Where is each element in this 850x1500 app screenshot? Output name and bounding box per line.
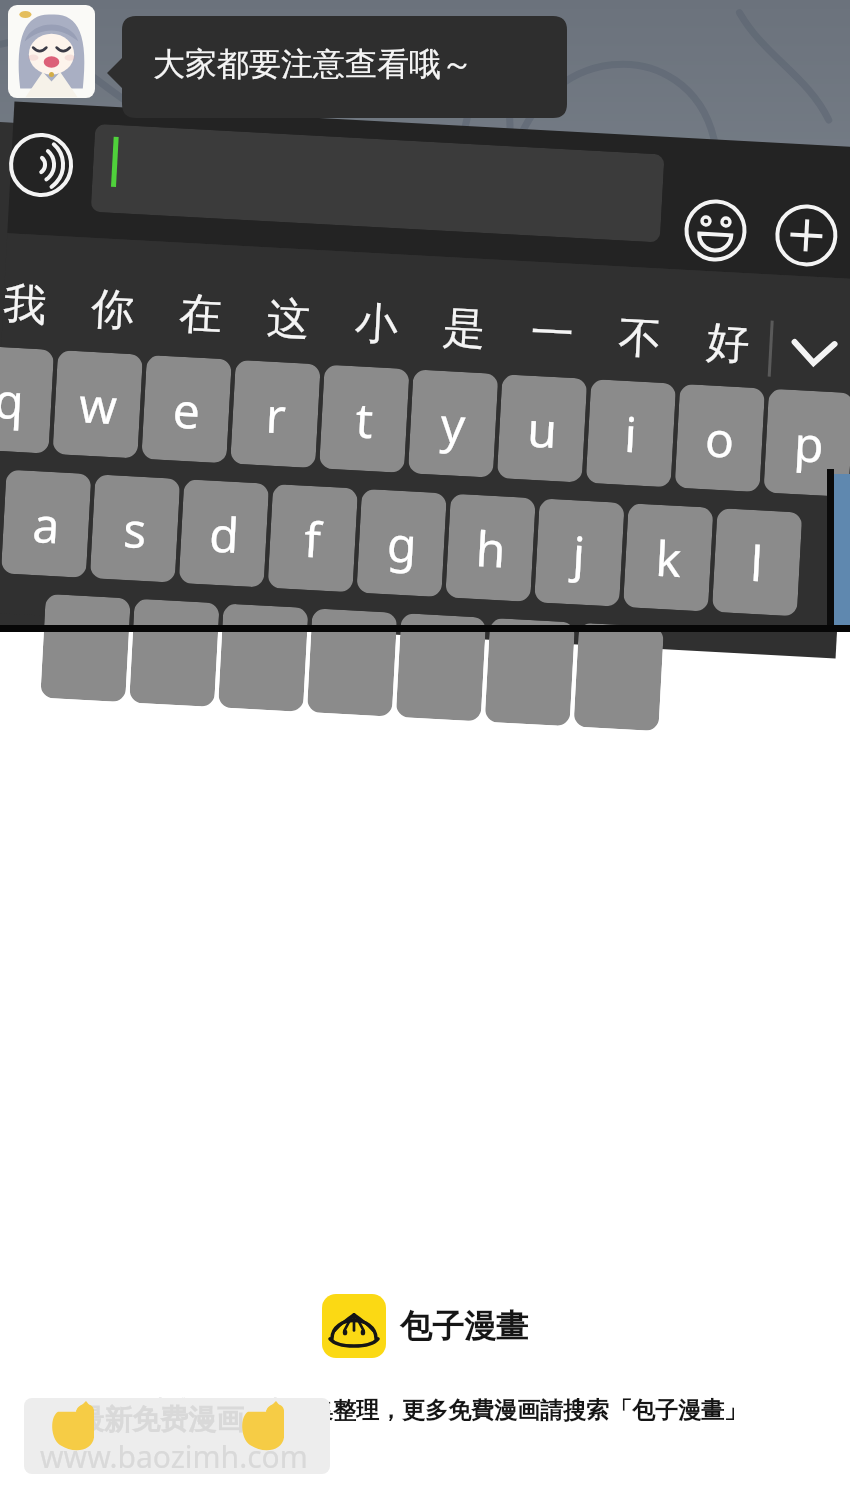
staticText: 一	[529, 306, 575, 362]
staticText: www.baozimh.com	[40, 1436, 308, 1477]
button[interactable]: e	[141, 355, 232, 463]
staticText: 小	[353, 296, 399, 352]
staticText: 是	[441, 301, 487, 357]
button[interactable]: j	[534, 498, 625, 607]
staticText: y	[439, 391, 467, 457]
button[interactable]: l	[712, 508, 802, 616]
staticText: q	[0, 367, 26, 433]
button[interactable]: w	[52, 350, 143, 458]
button[interactable]: h	[445, 494, 536, 602]
staticText: k	[654, 525, 683, 591]
staticText: f	[302, 506, 323, 572]
staticText: 包子漫畫	[400, 1306, 528, 1346]
button[interactable]: r	[230, 360, 321, 468]
staticText: 这	[266, 291, 311, 348]
button[interactable]: 小	[339, 291, 413, 357]
staticText: p	[792, 410, 826, 477]
staticText: d	[208, 501, 241, 567]
staticText: w	[77, 371, 119, 438]
button[interactable]: 这	[251, 287, 325, 352]
button[interactable]	[396, 613, 486, 721]
button[interactable]: 我	[0, 272, 61, 338]
staticText: j	[571, 520, 588, 586]
staticText: u	[526, 396, 559, 462]
button[interactable]: d	[179, 479, 269, 587]
staticText: 大家都要注意查看哦～	[153, 44, 473, 84]
button[interactable]: 是	[427, 296, 500, 362]
button[interactable]: 不	[603, 306, 676, 371]
staticText: 你	[90, 282, 136, 338]
button[interactable]	[573, 623, 664, 731]
button[interactable]: Expand candidates	[779, 319, 850, 383]
button[interactable]: Emoji	[683, 198, 748, 263]
button[interactable]: t	[319, 365, 410, 473]
staticText: h	[474, 515, 508, 582]
button[interactable]: 你	[76, 277, 149, 343]
staticText: i	[623, 401, 639, 466]
staticText: o	[703, 405, 737, 472]
button[interactable]: 包子漫畫	[322, 1294, 528, 1358]
button[interactable]: a	[1, 469, 91, 578]
button[interactable]	[218, 603, 308, 712]
staticText: s	[122, 496, 148, 562]
staticText: 好	[705, 315, 751, 371]
button[interactable]: f	[267, 484, 358, 592]
button[interactable]: o	[674, 384, 765, 492]
staticText: 我	[2, 277, 48, 333]
button[interactable]	[485, 618, 575, 726]
staticText: t	[354, 386, 375, 452]
staticText: 在	[178, 287, 224, 343]
button[interactable]	[307, 608, 397, 717]
button[interactable]: p	[763, 389, 850, 497]
staticText: r	[264, 381, 288, 447]
staticText: l	[749, 530, 765, 595]
button[interactable]: g	[356, 489, 447, 597]
staticText: 不	[617, 310, 663, 367]
button[interactable]: 在	[164, 282, 237, 348]
button[interactable]: i	[586, 379, 676, 487]
staticText: 最新免费漫画	[76, 1402, 244, 1437]
button[interactable]: q	[0, 345, 54, 454]
button[interactable]	[40, 594, 131, 702]
button[interactable]: y	[408, 369, 498, 478]
button[interactable]	[91, 124, 664, 242]
button[interactable]: More options	[774, 203, 839, 268]
staticText: a	[31, 491, 61, 557]
staticText: g	[385, 510, 419, 577]
button[interactable]: 大家都要注意查看哦～	[153, 44, 473, 84]
button[interactable]: u	[497, 374, 587, 483]
button[interactable]: 一	[515, 301, 588, 367]
button[interactable]	[129, 599, 220, 707]
button[interactable]: Voice message	[7, 131, 75, 199]
button[interactable]: 好	[691, 310, 764, 376]
staticText: e	[171, 376, 203, 443]
button[interactable]: s	[90, 474, 180, 583]
staticText: 本漫畫由包子漫畫收集整理，更多免費漫画請搜索「包子漫畫」	[103, 1396, 747, 1425]
button[interactable]: k	[623, 503, 713, 612]
